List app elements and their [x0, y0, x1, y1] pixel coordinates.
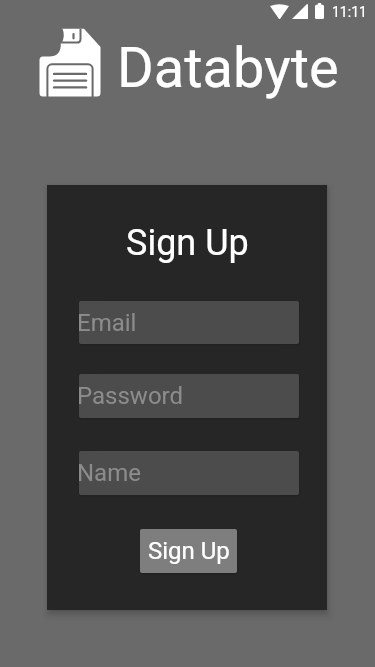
staticText: Password: [79, 382, 184, 410]
button[interactable]: Email: [79, 301, 299, 344]
button[interactable]: Sign Up: [140, 529, 237, 573]
staticText: 11:11: [332, 4, 367, 20]
staticText: Sign Up: [126, 222, 249, 264]
staticText: Name: [79, 459, 141, 487]
button[interactable]: Name: [79, 451, 299, 495]
button[interactable]: Password: [79, 374, 299, 418]
staticText: Sign Up: [148, 537, 230, 565]
staticText: Email: [79, 309, 137, 337]
other: Databyte logo: [38, 27, 104, 99]
staticText: Databyte: [117, 35, 339, 101]
